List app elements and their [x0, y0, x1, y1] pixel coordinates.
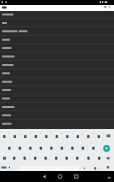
- button[interactable]: [0, 11, 114, 19]
- button[interactable]: [0, 59, 114, 67]
- button[interactable]: [0, 115, 114, 123]
- button[interactable]: [0, 91, 114, 99]
- button[interactable]: [33, 171, 49, 182]
- button[interactable]: [0, 107, 114, 115]
- button[interactable]: [101, 144, 112, 154]
- button[interactable]: [19, 165, 79, 171]
- button[interactable]: [0, 75, 114, 83]
- button[interactable]: [0, 43, 114, 51]
- button[interactable]: [0, 35, 114, 43]
- button[interactable]: [0, 51, 114, 59]
- button[interactable]: [0, 27, 114, 35]
- button[interactable]: [65, 171, 81, 182]
- button[interactable]: [0, 99, 114, 107]
- button[interactable]: [0, 83, 114, 91]
- button[interactable]: [0, 19, 114, 27]
- button[interactable]: [49, 171, 65, 182]
- button[interactable]: [0, 67, 114, 75]
- button[interactable]: [0, 5, 114, 11]
